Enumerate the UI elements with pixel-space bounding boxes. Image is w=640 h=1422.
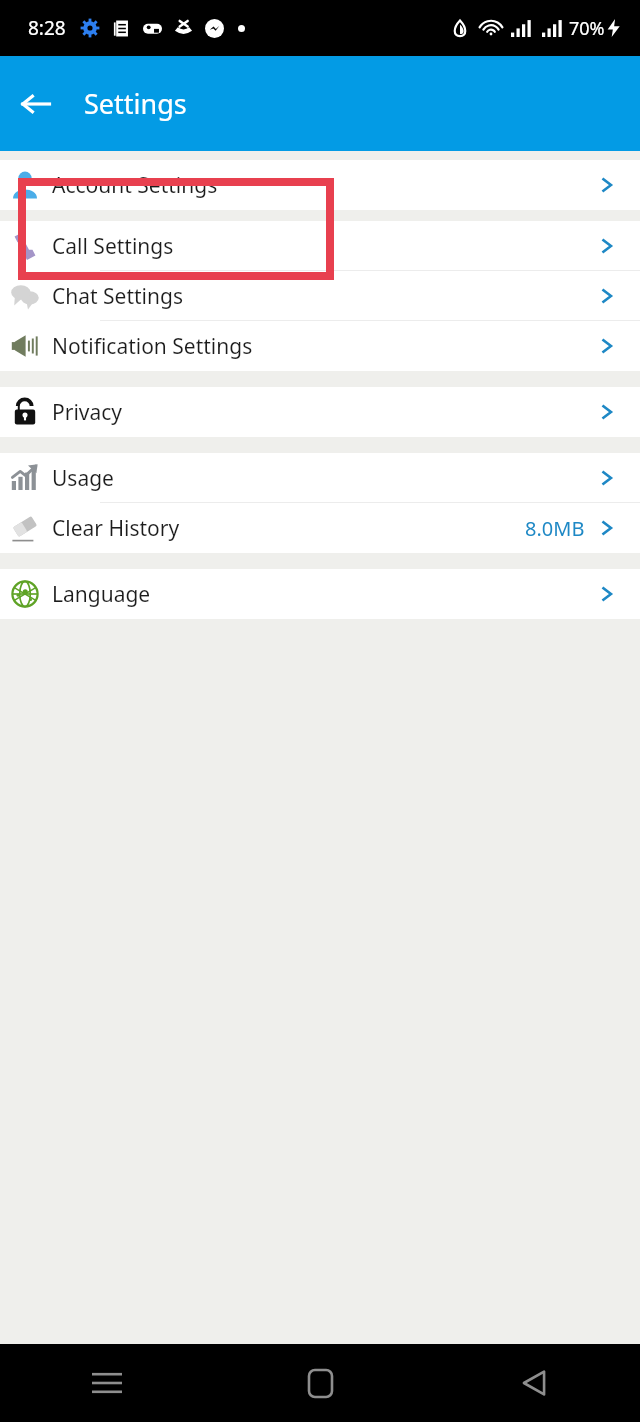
button[interactable]: Back bbox=[0, 68, 72, 140]
button[interactable]: Privacy bbox=[0, 387, 640, 437]
staticText: Account Settings bbox=[52, 171, 218, 200]
staticText: 8.0MB bbox=[525, 515, 585, 542]
button[interactable]: Back bbox=[427, 1344, 640, 1422]
staticText: Chat Settings bbox=[52, 282, 183, 311]
staticText: Settings bbox=[84, 85, 187, 122]
button[interactable]: Chat Settings bbox=[0, 271, 640, 321]
staticText: Call Settings bbox=[52, 232, 174, 261]
button[interactable]: Account Settings bbox=[0, 160, 640, 210]
staticText: Usage bbox=[52, 464, 114, 493]
button[interactable]: Notification Settings bbox=[0, 321, 640, 371]
staticText: Clear History bbox=[52, 514, 180, 543]
button[interactable]: Home bbox=[214, 1344, 427, 1422]
staticText: 70% bbox=[569, 16, 605, 41]
button[interactable]: Recents bbox=[0, 1344, 214, 1422]
staticText: Privacy bbox=[52, 398, 123, 427]
staticText: 8:28 bbox=[28, 15, 66, 41]
staticText: Language bbox=[52, 580, 151, 609]
button[interactable]: Clear History bbox=[0, 503, 640, 553]
button[interactable]: Language bbox=[0, 569, 640, 619]
button[interactable]: Usage bbox=[0, 453, 640, 503]
button[interactable]: Call Settings bbox=[0, 221, 640, 271]
staticText: Notification Settings bbox=[52, 332, 253, 361]
